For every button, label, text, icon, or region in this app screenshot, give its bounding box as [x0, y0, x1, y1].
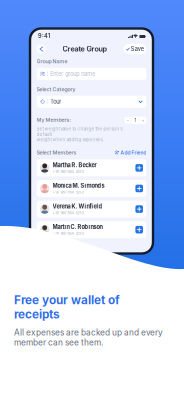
staticText: +91 987 654 3210	[53, 190, 85, 194]
button[interactable]: Verena K. Winfield	[37, 201, 146, 218]
staticText: Enter group name	[50, 70, 95, 77]
staticText: Select Members	[37, 149, 77, 156]
staticText: +	[141, 117, 144, 123]
button[interactable]: Increase weight	[139, 117, 146, 124]
button[interactable]: Save	[124, 44, 146, 54]
button[interactable]: Add member	[135, 185, 143, 192]
button[interactable]: Tour	[37, 96, 146, 108]
staticText: +91 987 654 3210	[53, 169, 85, 174]
staticText: My Members:	[37, 117, 72, 123]
staticText: Free your wallet of receipts	[14, 293, 120, 321]
staticText: Martin C. Robinson	[53, 224, 103, 230]
button[interactable]: Add Friend	[115, 149, 146, 156]
button[interactable]: Decrease weight	[124, 117, 131, 124]
button[interactable]: Martha R. Becker	[37, 159, 146, 176]
staticText: Create Group	[63, 45, 107, 53]
button[interactable]: Add member	[135, 164, 143, 172]
staticText: Martha R. Becker	[53, 162, 97, 169]
button[interactable]: Martin C. Robinson	[37, 221, 146, 238]
button[interactable]: Add member	[135, 226, 143, 233]
button[interactable]: Back	[37, 44, 46, 53]
staticText: Monica M. Simonds	[53, 182, 105, 189]
staticText: Group Name	[37, 58, 68, 65]
staticText: Set weight value to change the person's …	[37, 126, 123, 142]
staticText: Select Category	[37, 86, 76, 93]
staticText: 1	[134, 117, 136, 123]
staticText: All expenses are backed up and every mem…	[14, 327, 163, 347]
staticText: 9:41	[38, 33, 50, 39]
button[interactable]: Add member	[135, 205, 143, 213]
staticText: +91 987 654 3210	[53, 210, 85, 215]
button[interactable]: Enter group name	[37, 68, 146, 80]
staticText: Tour	[50, 98, 61, 105]
button[interactable]: Monica M. Simonds	[37, 180, 146, 197]
staticText: Add Friend	[120, 149, 146, 156]
staticText: +91 987 654 3210	[53, 231, 85, 236]
staticText: Verena K. Winfield	[53, 203, 103, 210]
staticText: −	[126, 117, 129, 123]
staticText: Save	[131, 46, 144, 52]
